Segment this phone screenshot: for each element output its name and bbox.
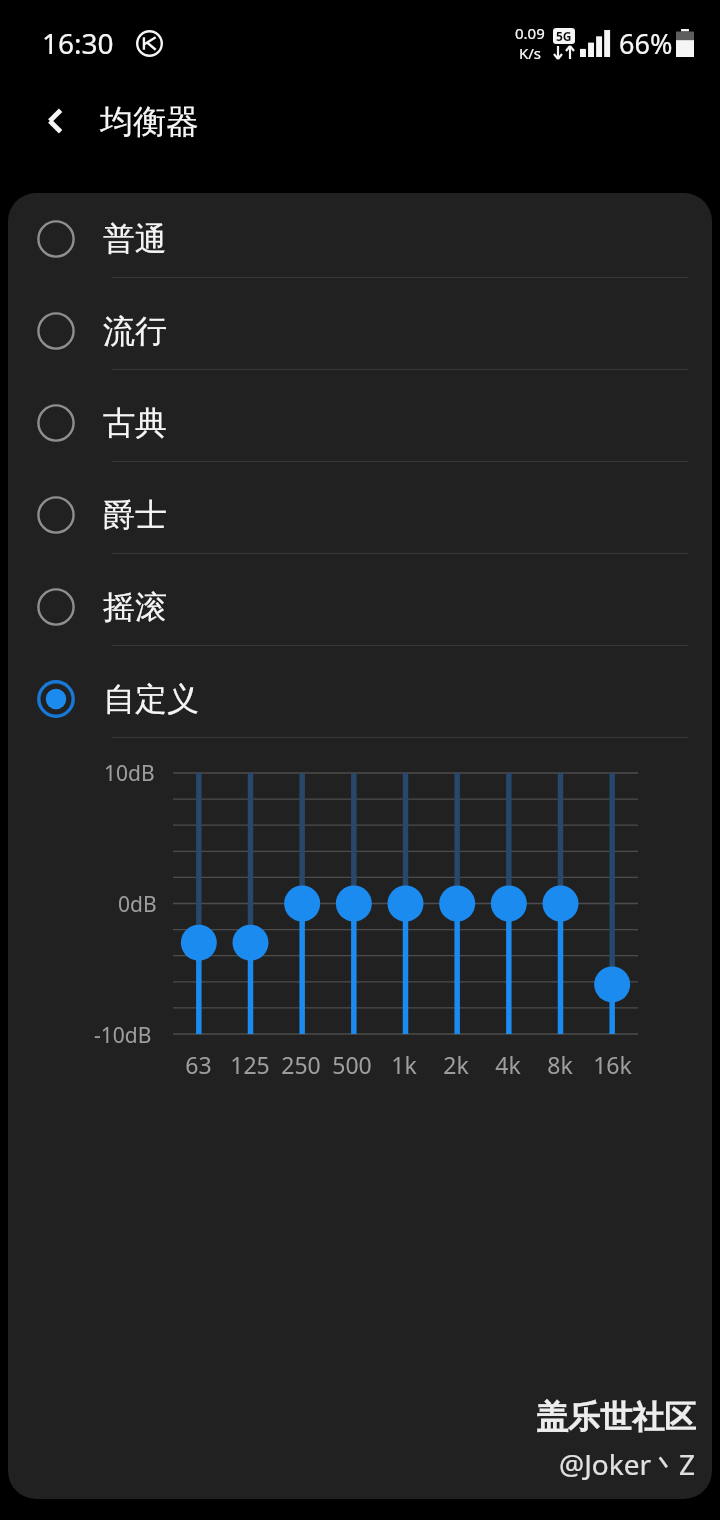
staticText: 自定义 [103,679,199,719]
button[interactable]: 流行 [8,285,712,377]
staticText: 0.09 [515,23,545,43]
staticText: 普通 [103,219,167,259]
staticText: 1k [391,1049,417,1080]
staticText: 盖乐世社区 [536,1397,696,1437]
staticText: 古典 [103,403,167,443]
staticText: 2k [443,1049,469,1080]
button[interactable]: 普通 [8,193,712,285]
staticText: 500 [332,1049,372,1080]
staticText: 4k [495,1049,521,1080]
button[interactable]: 爵士 [8,469,712,561]
staticText: 流行 [103,311,167,351]
staticText: 63 [185,1049,212,1080]
staticText: 125 [230,1049,270,1080]
button[interactable]: 返回 [26,90,88,152]
staticText: 16k [593,1049,632,1080]
staticText: 0dB [118,890,157,919]
staticText: -10dB [94,1021,152,1050]
staticText: 66% [619,25,673,62]
staticText: 10dB [104,759,155,788]
staticText: 16:30 [42,24,114,62]
button[interactable]: 自定义 [8,653,712,745]
staticText: K/s [519,43,542,63]
staticText: 摇滚 [103,587,167,627]
staticText: @Joker丶Z [559,1445,696,1483]
staticText: 8k [547,1049,573,1080]
staticText: 5G [556,28,572,44]
staticText: 爵士 [103,495,167,535]
button[interactable]: 摇滚 [8,561,712,653]
staticText: 均衡器 [100,101,199,143]
staticText: 250 [281,1049,321,1080]
button[interactable]: 古典 [8,377,712,469]
